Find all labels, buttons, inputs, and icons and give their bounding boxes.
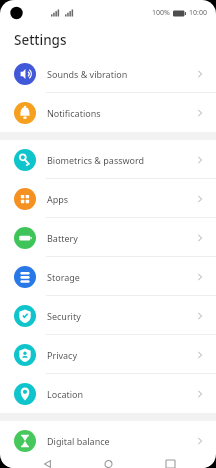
button[interactable]: Biometrics & password <box>0 140 216 179</box>
staticText: Sounds & vibration <box>47 68 128 80</box>
staticText: 10:00 <box>189 8 207 18</box>
button[interactable]: Apps <box>0 179 216 218</box>
button[interactable]: Location <box>0 374 216 413</box>
staticText: Biometrics & password <box>47 154 145 166</box>
staticText: Apps <box>47 193 69 205</box>
button[interactable]: Digital balance <box>0 421 216 460</box>
staticText: Storage <box>47 271 80 283</box>
button[interactable]: Storage <box>0 257 216 296</box>
staticText: Security <box>47 310 81 322</box>
staticText: Privacy <box>47 349 78 361</box>
staticText: Location <box>47 388 84 400</box>
staticText: Settings <box>14 31 67 49</box>
staticText: 100% <box>152 8 170 18</box>
button[interactable]: Privacy <box>0 335 216 374</box>
button[interactable]: Notifications <box>0 93 216 132</box>
staticText: Battery <box>47 232 78 244</box>
button[interactable]: Sounds & vibration <box>0 54 216 93</box>
staticText: Digital balance <box>47 435 110 447</box>
button[interactable]: Back <box>32 460 62 468</box>
button[interactable]: Battery <box>0 218 216 257</box>
staticText: Notifications <box>47 107 101 119</box>
button[interactable]: Security <box>0 296 216 335</box>
button[interactable]: Recents <box>155 460 185 468</box>
button[interactable]: Home <box>93 460 123 468</box>
